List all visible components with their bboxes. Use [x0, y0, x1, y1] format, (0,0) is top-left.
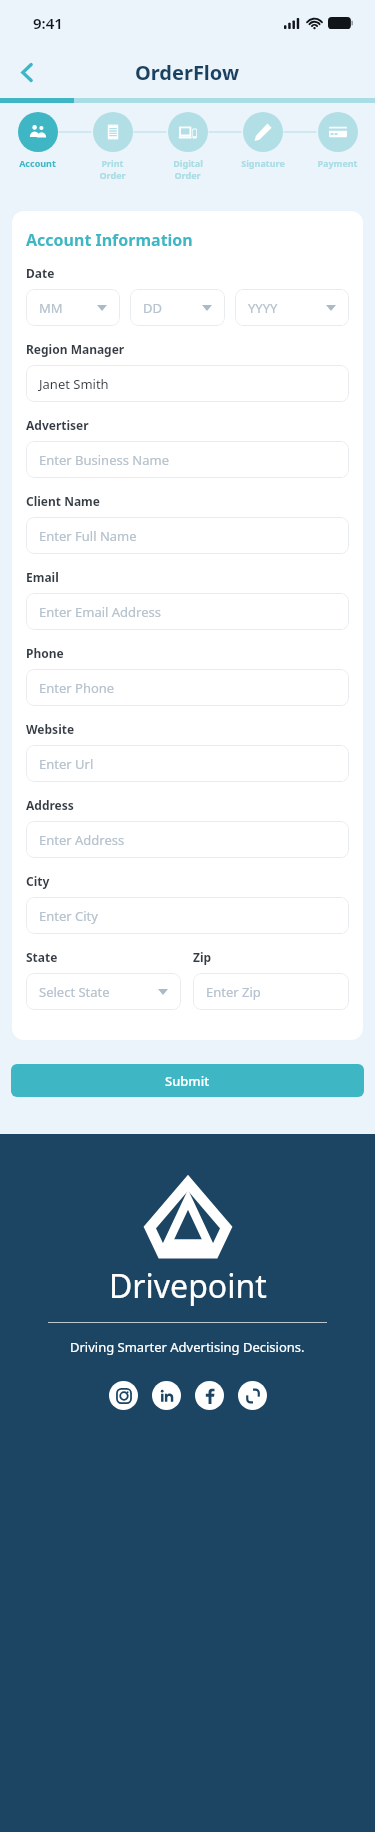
staticText: Phone — [26, 645, 64, 661]
button[interactable]: Signature — [225, 112, 300, 169]
staticText: Email — [26, 569, 59, 585]
staticText: Advertiser — [26, 417, 89, 433]
button[interactable]: Back — [6, 51, 48, 93]
staticText: Order — [99, 169, 126, 181]
staticText: Drivepoint — [109, 1264, 267, 1308]
staticText: Enter Zip — [206, 983, 261, 1001]
staticText: Region Manager — [26, 341, 125, 357]
button[interactable]: Glassdoor — [238, 1381, 267, 1410]
button[interactable]: Enter Email Address — [26, 593, 349, 630]
staticText: Client Name — [26, 493, 100, 509]
staticText: OrderFlow — [135, 59, 240, 86]
button[interactable]: Enter Zip — [193, 973, 349, 1010]
button[interactable]: Enter Business Name — [26, 441, 349, 478]
staticText: State — [26, 949, 58, 965]
staticText: Enter Full Name — [39, 527, 137, 545]
staticText: Zip — [193, 949, 212, 965]
staticText: YYYY — [248, 299, 278, 317]
staticText: MM — [39, 299, 63, 317]
button[interactable]: LinkedIn — [152, 1381, 181, 1410]
staticText: Enter Email Address — [39, 603, 161, 621]
staticText: Submit — [165, 1072, 210, 1090]
staticText: Digital — [173, 157, 203, 169]
staticText: Enter Url — [39, 755, 94, 773]
staticText: Enter Address — [39, 831, 125, 849]
button[interactable]: DD — [130, 289, 225, 326]
button[interactable]: Digital — [150, 112, 225, 181]
staticText: Date — [26, 265, 55, 281]
button[interactable]: MM — [26, 289, 120, 326]
button[interactable]: Select State — [26, 973, 181, 1010]
staticText: Account Information — [26, 229, 193, 251]
button[interactable]: Submit — [11, 1064, 364, 1097]
button[interactable]: Print — [75, 112, 150, 181]
staticText: 9:41 — [33, 13, 63, 33]
staticText: Enter City — [39, 907, 98, 925]
staticText: Website — [26, 721, 75, 737]
button[interactable]: Account — [0, 112, 75, 169]
button[interactable]: Enter Full Name — [26, 517, 349, 554]
staticText: Select State — [39, 983, 110, 1001]
button[interactable]: Enter Address — [26, 821, 349, 858]
staticText: DD — [143, 299, 162, 317]
button[interactable]: Payment — [300, 112, 375, 169]
staticText: Payment — [317, 157, 358, 169]
staticText: Driving Smarter Advertising Decisions. — [70, 1338, 305, 1356]
staticText: Print — [101, 157, 124, 169]
staticText: Signature — [241, 157, 285, 169]
staticText: Janet Smith — [39, 375, 109, 393]
staticText: Address — [26, 797, 74, 813]
staticText: Order — [174, 169, 201, 181]
staticText: City — [26, 873, 50, 889]
button[interactable]: Enter City — [26, 897, 349, 934]
staticText: Account — [19, 157, 56, 169]
button[interactable]: Enter Phone — [26, 669, 349, 706]
staticText: Enter Business Name — [39, 451, 169, 469]
button[interactable]: Enter Url — [26, 745, 349, 782]
staticText: Enter Phone — [39, 679, 115, 697]
button[interactable]: Janet Smith — [26, 365, 349, 402]
button[interactable]: Instagram — [109, 1381, 138, 1410]
button[interactable]: Facebook — [195, 1381, 224, 1410]
button[interactable]: YYYY — [235, 289, 349, 326]
